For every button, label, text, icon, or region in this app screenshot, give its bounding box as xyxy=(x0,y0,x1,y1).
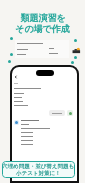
staticText: 小テスト対策に！ xyxy=(16,170,61,177)
staticText: 類題演習を xyxy=(20,12,66,23)
staticText: 穴埋め問題・並び替え問題も xyxy=(2,163,75,170)
staticText: その場で作成 xyxy=(15,23,70,34)
button[interactable]: 穴埋め問題・並び替え問題も xyxy=(2,161,75,178)
other: Back xyxy=(14,75,18,79)
